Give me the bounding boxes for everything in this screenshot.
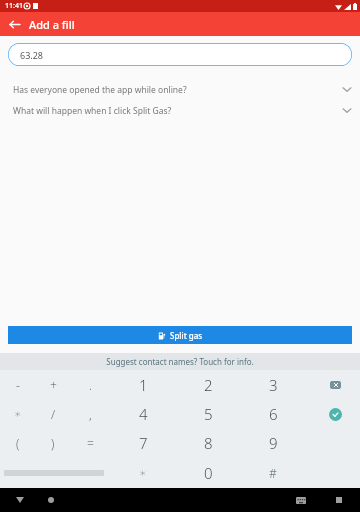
button[interactable]: Suggest contact names? Touch for info. (0, 353, 360, 370)
staticText: 0 (204, 463, 213, 483)
staticText: Split gas (170, 330, 203, 341)
button[interactable]: What will happen when I click Split Gas? (0, 100, 360, 121)
staticText: 11:41 (5, 1, 23, 11)
staticText: , (89, 406, 92, 422)
button[interactable]: Enter (318, 401, 352, 427)
button[interactable]: Recents (330, 491, 348, 509)
button[interactable]: Back (11, 491, 29, 509)
button[interactable]: 9 (256, 430, 290, 456)
button[interactable]: Back (4, 14, 24, 34)
staticText: ( (16, 435, 20, 451)
staticText: ∗ (14, 407, 22, 421)
staticText: Suggest contact names? Touch for info. (106, 356, 254, 367)
button[interactable]: 1 (126, 372, 160, 398)
button[interactable]: , (73, 401, 107, 427)
staticText: 7 (139, 433, 148, 453)
staticText: 9 (269, 433, 278, 453)
button[interactable]: ) (36, 430, 70, 456)
button[interactable]: 2 (191, 372, 225, 398)
button[interactable]: # (256, 460, 290, 486)
staticText: - (16, 377, 20, 393)
staticText: 5 (204, 404, 213, 424)
button[interactable]: - (1, 372, 35, 398)
staticText: Has everyone opened the app while online… (13, 84, 187, 96)
button[interactable]: ∗ (1, 401, 35, 427)
staticText: / (51, 406, 56, 422)
button[interactable]: Has everyone opened the app while online… (0, 79, 360, 100)
button[interactable]: 3 (256, 372, 290, 398)
button[interactable]: 63.28 (8, 43, 352, 66)
button[interactable]: Home (42, 491, 60, 509)
button[interactable]: 6 (256, 401, 290, 427)
button[interactable]: ( (1, 430, 35, 456)
button[interactable]: Keyboard (292, 491, 310, 509)
button[interactable]: 7 (126, 430, 160, 456)
button[interactable]: . (73, 372, 107, 398)
button[interactable]: Backspace (318, 372, 352, 398)
staticText: 3 (269, 375, 278, 395)
button[interactable]: / (36, 401, 70, 427)
staticText: = (87, 435, 94, 451)
staticText: ∗ (139, 466, 147, 480)
button[interactable]: = (73, 430, 107, 456)
button[interactable]: + (36, 372, 70, 398)
button[interactable]: Split gas (8, 326, 352, 344)
button[interactable]: 0 (191, 460, 225, 486)
button[interactable]: Space (4, 460, 104, 486)
staticText: 6 (269, 404, 278, 424)
staticText: 63.28 (20, 49, 44, 61)
staticText: 1 (139, 375, 148, 395)
staticText: + (50, 377, 57, 393)
button[interactable]: ∗ (126, 460, 160, 486)
staticText: # (269, 465, 277, 481)
button[interactable]: 5 (191, 401, 225, 427)
staticText: ) (51, 435, 55, 451)
button[interactable]: 4 (126, 401, 160, 427)
staticText: 8 (204, 433, 213, 453)
staticText: . (89, 377, 92, 393)
staticText: 2 (204, 375, 213, 395)
staticText: 4 (139, 404, 148, 424)
button[interactable]: 8 (191, 430, 225, 456)
staticText: What will happen when I click Split Gas? (13, 105, 172, 117)
staticText: Add a fill (29, 17, 75, 32)
